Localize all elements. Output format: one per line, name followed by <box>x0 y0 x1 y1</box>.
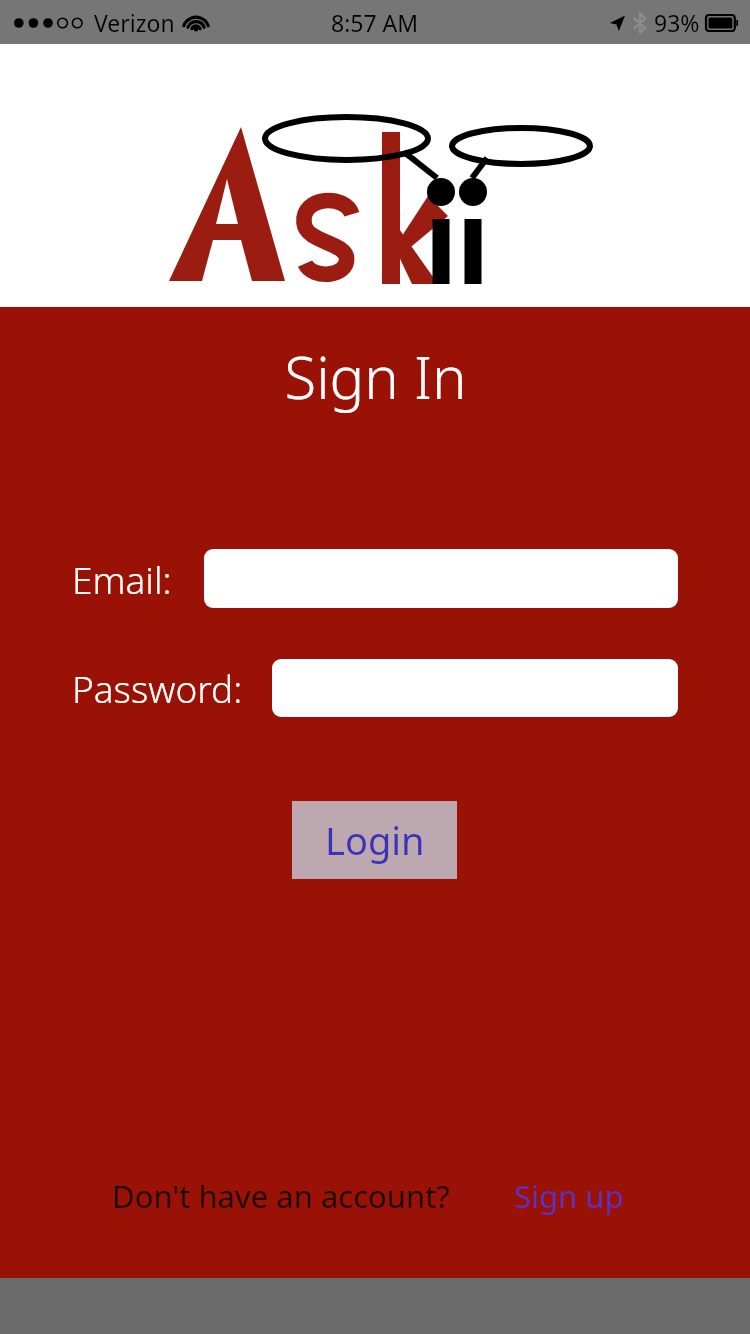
button[interactable] <box>272 659 678 717</box>
staticText: Sign up <box>514 1175 624 1217</box>
staticText: Sign In <box>284 337 467 416</box>
button[interactable]: Sign up <box>514 1175 624 1217</box>
staticText: Don't have an account? <box>112 1175 450 1217</box>
staticText: Login <box>325 814 425 866</box>
staticText: Password: <box>72 663 243 713</box>
button[interactable] <box>204 549 678 608</box>
staticText: Email: <box>72 554 172 604</box>
staticText: 8:57 AM <box>331 7 419 38</box>
staticText: Verizon <box>94 7 175 38</box>
button[interactable]: Login <box>292 801 457 879</box>
staticText: 93% <box>654 7 700 38</box>
